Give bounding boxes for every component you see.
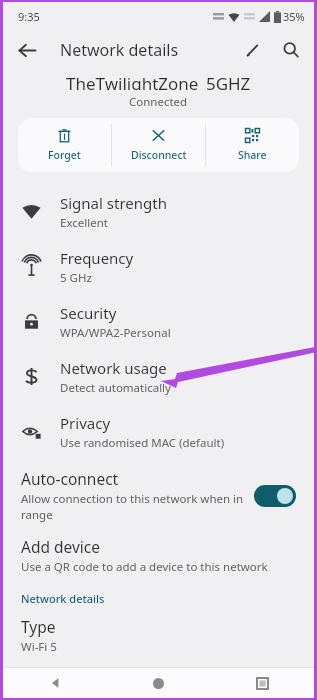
button[interactable]: Recent apps — [210, 668, 314, 698]
button[interactable]: Frequency — [3, 239, 314, 294]
button[interactable]: Privacy — [3, 404, 314, 459]
staticText: Connected — [129, 94, 188, 110]
staticText: Security — [60, 303, 117, 323]
staticText: 9:35 — [18, 9, 40, 24]
button[interactable]: Search — [274, 33, 308, 67]
button[interactable]: Signal strength — [3, 184, 314, 239]
button[interactable]: Back — [9, 32, 45, 68]
staticText: Wi-Fi 5 — [21, 639, 57, 655]
button[interactable]: Disconnect — [112, 118, 205, 172]
staticText: Excellent — [60, 215, 108, 231]
staticText: 5 GHz — [60, 270, 92, 286]
staticText: Forget — [48, 148, 81, 162]
button[interactable]: Share — [206, 118, 299, 172]
button[interactable]: Type — [3, 614, 314, 657]
staticText: Privacy — [60, 413, 111, 433]
staticText: Network details — [60, 39, 179, 61]
staticText: Detect automatically — [60, 380, 171, 396]
staticText: Type — [21, 616, 56, 637]
staticText: Disconnect — [131, 148, 187, 162]
staticText: Signal strength — [60, 193, 167, 213]
button[interactable]: Home — [106, 668, 210, 698]
staticText: Use randomised MAC (default) — [60, 435, 225, 451]
staticText: 35% — [283, 9, 305, 24]
button[interactable]: Back — [3, 668, 106, 698]
button[interactable]: Auto-connect toggle — [254, 485, 296, 507]
button[interactable]: Network usage — [3, 349, 314, 404]
button[interactable]: Auto-connect — [3, 465, 314, 526]
button[interactable]: Security — [3, 294, 314, 349]
button[interactable]: Edit — [236, 33, 270, 67]
staticText: Share — [238, 148, 267, 162]
staticText: Frequency — [60, 248, 134, 268]
button[interactable]: Add device — [3, 534, 314, 577]
staticText: TheTwilightZone_5GHZ — [66, 72, 251, 90]
staticText: WPA/WPA2-Personal — [60, 325, 171, 341]
staticText: Network usage — [60, 358, 167, 378]
staticText: Auto-connect — [21, 468, 119, 489]
staticText: Allow connection to this network when in… — [21, 491, 246, 523]
staticText: Use a QR code to add a device to this ne… — [21, 559, 268, 575]
button[interactable]: Forget — [18, 118, 111, 172]
staticText: Add device — [21, 536, 101, 557]
staticText: Network details — [21, 591, 105, 606]
